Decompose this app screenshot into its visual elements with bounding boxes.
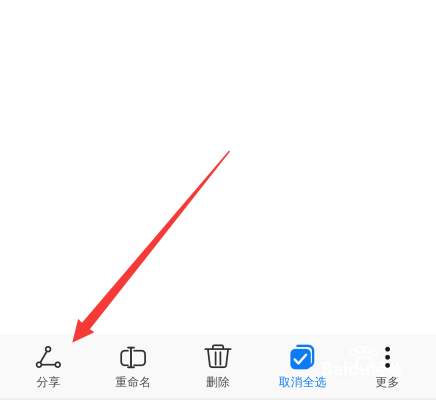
staticText: jingyan.baidu.com — [325, 374, 407, 386]
button[interactable]: 更多 — [345, 334, 430, 398]
staticText: 重命名 — [115, 375, 151, 389]
staticText: Baidu — [321, 357, 370, 380]
button[interactable]: 删除 — [176, 334, 260, 398]
staticText: 经验 — [371, 360, 403, 380]
button[interactable]: 取消全选 — [260, 334, 345, 398]
staticText: 删除 — [206, 375, 230, 389]
button[interactable]: 分享 — [6, 334, 91, 398]
staticText: 分享 — [36, 375, 60, 389]
staticText: 更多 — [376, 375, 400, 389]
button[interactable]: 重命名 — [91, 334, 176, 398]
staticText: 取消全选 — [279, 375, 327, 389]
